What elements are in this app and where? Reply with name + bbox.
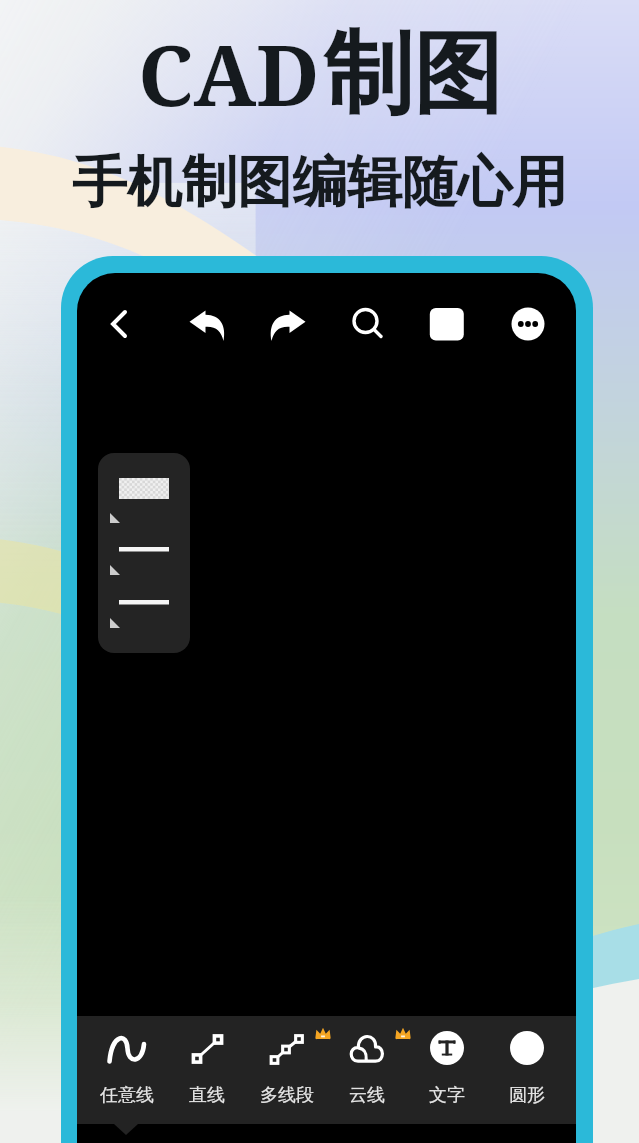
staticText: 直线 — [189, 1084, 225, 1107]
staticText: CAD — [138, 17, 320, 130]
button[interactable]: Redo — [263, 300, 311, 348]
staticText: 多线段 — [260, 1084, 314, 1107]
staticText: 云线 — [349, 1084, 385, 1107]
button[interactable]: Undo — [184, 300, 232, 348]
button[interactable]: Back — [95, 300, 143, 348]
button[interactable]: 直线 — [167, 1016, 247, 1124]
staticText: 手机制图编辑随心用 — [72, 148, 567, 217]
staticText: 制图 — [324, 18, 502, 130]
button[interactable]: 文字 — [407, 1016, 487, 1124]
button[interactable]: 圆形 — [487, 1016, 567, 1124]
staticText: 任意线 — [100, 1084, 154, 1107]
button[interactable]: Search — [344, 300, 392, 348]
button[interactable]: More options — [504, 300, 552, 348]
staticText: 文字 — [429, 1084, 465, 1107]
staticText: 圆形 — [509, 1084, 545, 1107]
button[interactable]: 任意线 — [87, 1016, 167, 1124]
button[interactable]: Shape — [422, 300, 470, 348]
button[interactable]: 云线 — [327, 1016, 407, 1124]
button[interactable] — [98, 453, 190, 653]
button[interactable]: 多线段 — [247, 1016, 327, 1124]
